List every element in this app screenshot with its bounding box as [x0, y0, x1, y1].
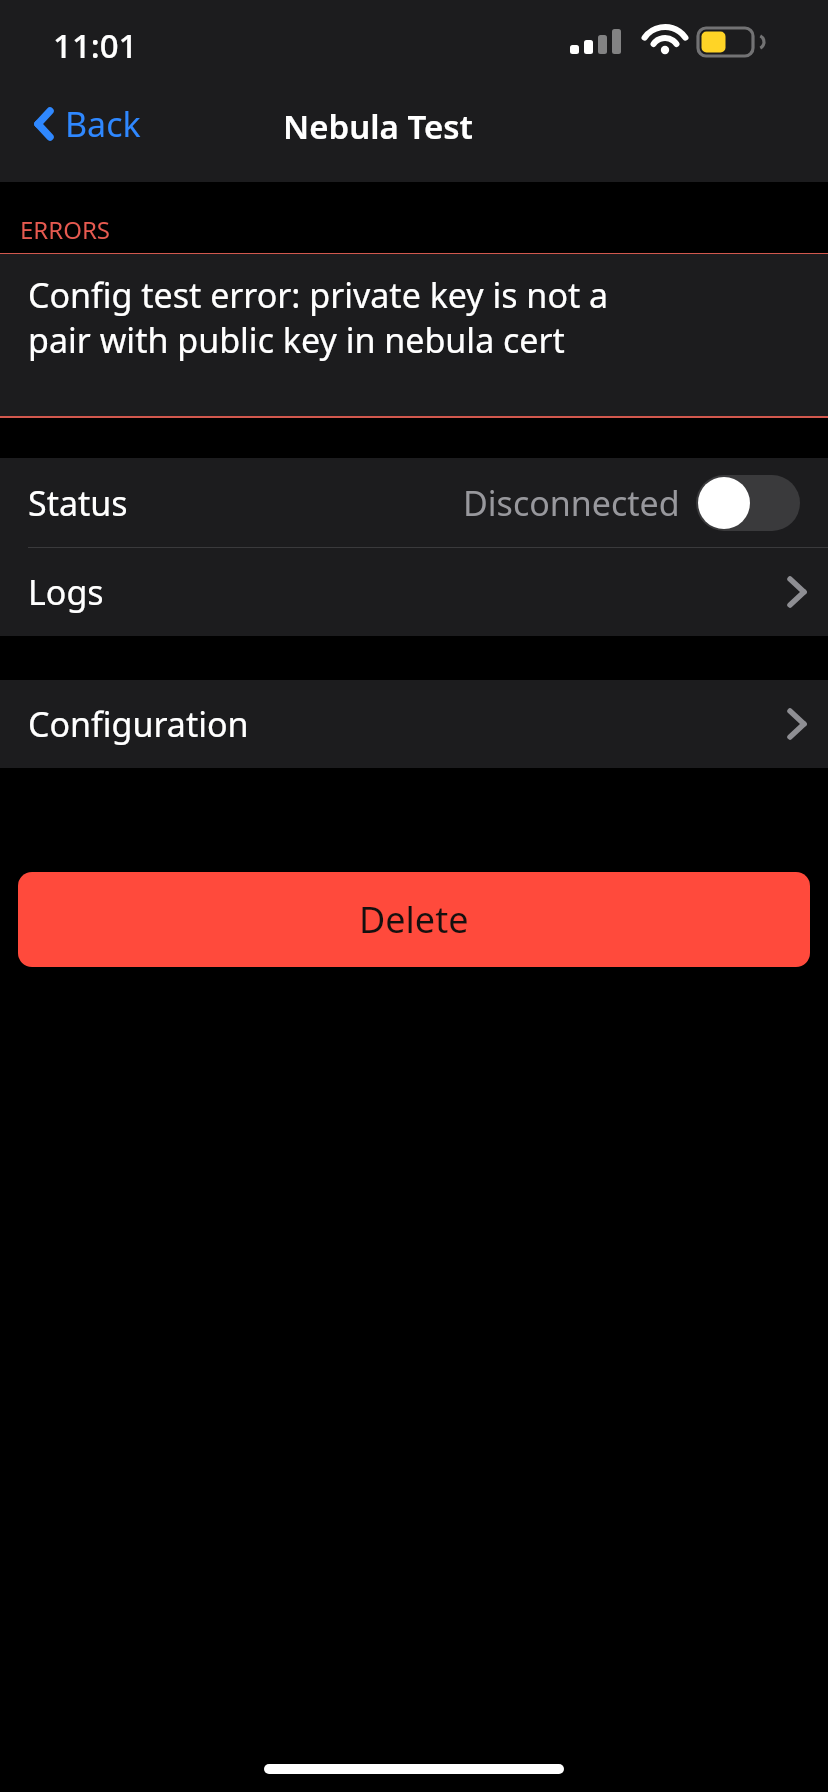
button[interactable]: Configuration — [0, 680, 828, 768]
staticText: ERRORS — [20, 213, 111, 246]
staticText: 11:01 — [53, 23, 138, 68]
staticText: Configuration — [28, 701, 249, 747]
staticText: Config test error: private key is not a … — [28, 272, 648, 362]
button[interactable]: Connection toggle, off — [696, 475, 800, 531]
staticText: Disconnected — [463, 480, 680, 526]
staticText: Delete — [359, 895, 469, 944]
button[interactable]: Back — [26, 96, 149, 152]
button[interactable]: Delete — [18, 872, 810, 967]
staticText: Back — [65, 101, 141, 147]
staticText: Logs — [28, 569, 104, 615]
staticText: Nebula Test — [283, 104, 473, 149]
button[interactable]: Status — [0, 458, 828, 547]
staticText: Status — [28, 480, 128, 526]
button[interactable]: Logs — [0, 548, 828, 636]
